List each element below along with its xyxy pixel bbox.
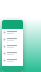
button[interactable]: [2, 50, 23, 57]
button[interactable]: [2, 29, 23, 36]
button[interactable]: [2, 57, 23, 64]
button[interactable]: [2, 36, 23, 43]
button[interactable]: [2, 43, 23, 50]
